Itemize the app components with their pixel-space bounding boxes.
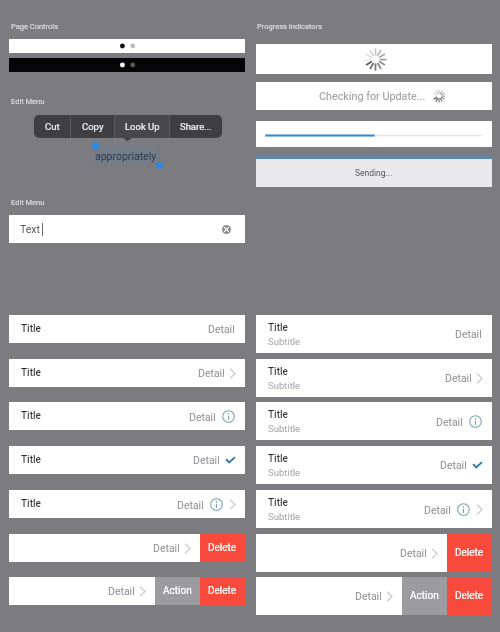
staticText: Detail: [193, 454, 220, 466]
button[interactable]: Delete: [200, 577, 245, 605]
staticText: Delete: [208, 585, 237, 597]
button[interactable]: Page control: [9, 39, 245, 53]
button[interactable]: Title: [256, 490, 492, 528]
button[interactable]: Look Up: [115, 115, 169, 138]
button[interactable]: Action: [155, 577, 200, 605]
staticText: Text: [20, 223, 40, 235]
staticText: Title: [21, 498, 41, 510]
staticText: Title: [21, 367, 41, 379]
button[interactable]: Share...: [170, 115, 222, 138]
staticText: Title: [21, 323, 41, 335]
staticText: Edit Menu: [11, 198, 45, 207]
staticText: Delete: [208, 542, 237, 554]
button[interactable]: Title: [9, 359, 245, 387]
button[interactable]: Action: [402, 577, 447, 615]
staticText: Detail: [198, 367, 225, 379]
staticText: Detail: [440, 459, 467, 471]
staticText: Action: [410, 590, 439, 602]
staticText: Detail: [424, 504, 451, 516]
staticText: Title: [268, 497, 288, 509]
staticText: Detail: [455, 328, 482, 340]
staticText: Detail: [400, 547, 427, 559]
button[interactable]: Text: [9, 215, 245, 243]
staticText: Title: [268, 453, 288, 465]
button[interactable]: Title: [256, 359, 492, 397]
button[interactable]: Cut: [34, 115, 70, 138]
button[interactable]: Detail: [9, 577, 155, 605]
button[interactable]: Title: [256, 446, 492, 484]
staticText: Detail: [177, 499, 204, 511]
staticText: Detail: [153, 542, 180, 554]
staticText: Detail: [445, 372, 472, 384]
staticText: Sending...: [355, 168, 393, 178]
staticText: Delete: [455, 547, 484, 559]
staticText: Subtitle: [268, 511, 301, 522]
staticText: Detail: [189, 411, 216, 423]
staticText: Subtitle: [268, 380, 301, 391]
button[interactable]: Detail: [256, 577, 402, 615]
staticText: Detail: [108, 585, 135, 597]
button[interactable]: Copy: [71, 115, 114, 138]
button[interactable]: Title: [9, 402, 245, 430]
staticText: Title: [21, 454, 41, 466]
staticText: Progress Indicators: [257, 22, 323, 31]
staticText: appropriately: [95, 150, 157, 162]
button[interactable]: Delete: [200, 534, 245, 562]
staticText: Detail: [355, 590, 382, 602]
button[interactable]: Delete: [447, 534, 492, 572]
button[interactable]: Detail: [256, 534, 447, 572]
button[interactable]: Detail: [9, 534, 200, 562]
staticText: Title: [268, 366, 288, 378]
staticText: Copy: [82, 121, 104, 132]
button[interactable]: Title: [9, 446, 245, 474]
button[interactable]: Clear text: [222, 225, 231, 234]
button[interactable]: Title: [256, 315, 492, 353]
staticText: Subtitle: [268, 423, 301, 434]
staticText: Title: [268, 322, 288, 334]
staticText: Subtitle: [268, 336, 301, 347]
button[interactable]: Title: [9, 315, 245, 343]
staticText: Detail: [208, 323, 235, 335]
staticText: Delete: [455, 590, 484, 602]
staticText: Look Up: [125, 121, 160, 132]
staticText: Edit Menu: [11, 97, 45, 106]
staticText: Subtitle: [268, 467, 301, 478]
staticText: Title: [268, 409, 288, 421]
staticText: Share...: [180, 121, 212, 132]
button[interactable]: Title: [9, 490, 245, 518]
button[interactable]: Title: [256, 402, 492, 440]
button[interactable]: Delete: [447, 577, 492, 615]
staticText: Page Controls: [11, 22, 59, 31]
button[interactable]: Page control dark: [9, 58, 245, 72]
staticText: Action: [163, 585, 192, 597]
staticText: Cut: [45, 121, 60, 132]
staticText: Detail: [436, 416, 463, 428]
staticText: Title: [21, 410, 41, 422]
staticText: Checking for Update...: [319, 90, 426, 103]
